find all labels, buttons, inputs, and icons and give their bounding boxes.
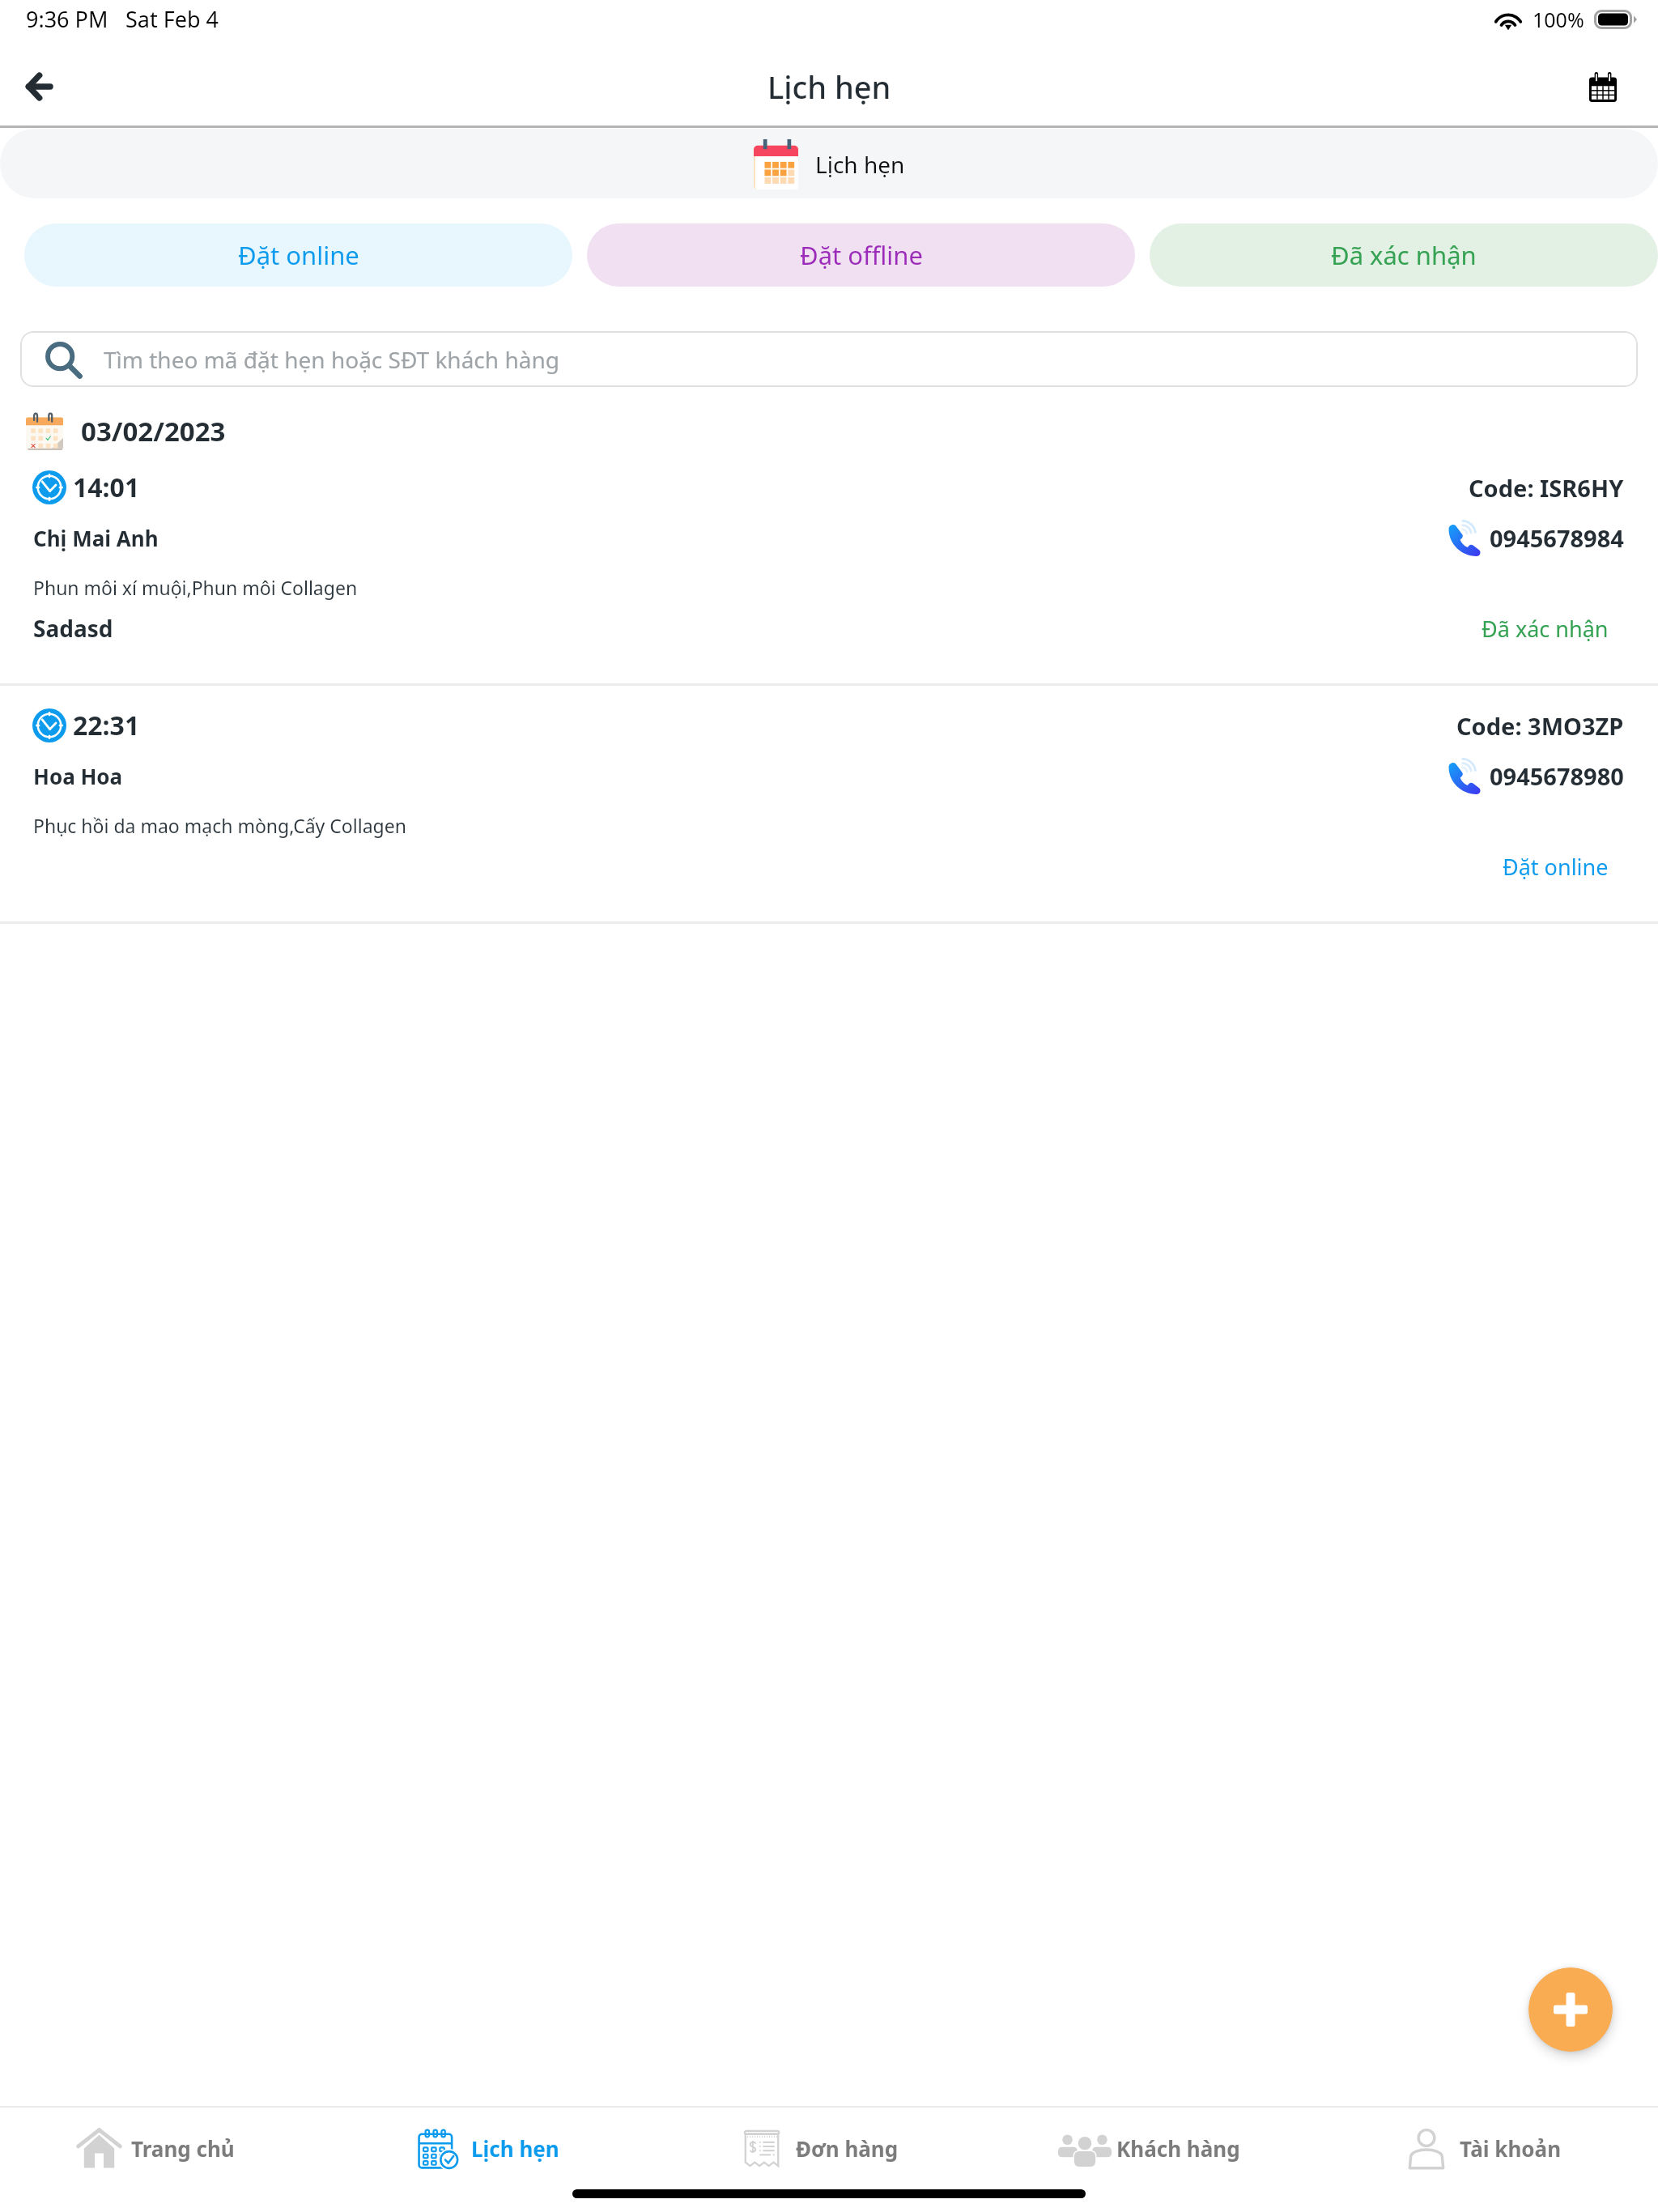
staticText: Đã xác nhận	[1331, 238, 1477, 272]
button[interactable]: Back	[10, 57, 68, 116]
button[interactable]: Tài khoản	[1401, 2108, 1568, 2189]
staticText: Phun môi xí muội,Phun môi Collagen	[33, 575, 358, 600]
staticText: Sat Feb 4	[125, 4, 219, 34]
staticText: Đã xác nhận	[1482, 614, 1609, 644]
staticText: Lịch hẹn	[767, 66, 891, 108]
staticText: 22:31	[73, 708, 140, 743]
staticText: 03/02/2023	[81, 413, 226, 449]
staticText: Code: 3MO3ZP	[1456, 710, 1624, 742]
button[interactable]: Đã xác nhận	[1150, 223, 1658, 287]
staticText: Khách hàng	[1116, 2134, 1240, 2163]
staticText: 0945678980	[1490, 760, 1624, 792]
button[interactable]: 22:31	[0, 690, 1658, 921]
button[interactable]: Tìm theo mã đặt hẹn hoặc SĐT khách hàng	[20, 331, 1638, 387]
staticText: Tài khoản	[1460, 2134, 1562, 2163]
button[interactable]: 14:01	[0, 452, 1658, 683]
staticText: Đơn hàng	[796, 2134, 899, 2163]
staticText: Chị Mai Anh	[33, 524, 159, 552]
button[interactable]: Khách hàng	[1052, 2108, 1247, 2189]
staticText: Tìm theo mã đặt hẹn hoặc SĐT khách hàng	[104, 344, 559, 375]
staticText: 100%	[1533, 6, 1584, 33]
staticText: Phục hồi da mao mạch mòng,Cấy Collagen	[33, 813, 406, 838]
staticText: Trang chủ	[131, 2134, 235, 2163]
button[interactable]: Đặt offline	[587, 223, 1135, 287]
button[interactable]: Đơn hàng	[737, 2108, 905, 2189]
staticText: Lịch hẹn	[471, 2134, 559, 2163]
staticText: Code: ISR6HY	[1469, 472, 1624, 504]
staticText: Đặt online	[1503, 852, 1609, 882]
button[interactable]: Lịch hẹn	[0, 129, 1658, 198]
staticText: 14:01	[73, 470, 140, 505]
staticText: Đặt offline	[800, 238, 923, 272]
staticText: 9:36 PM	[26, 4, 108, 34]
button[interactable]: Trang chủ	[70, 2108, 241, 2189]
staticText: Đặt online	[238, 238, 359, 272]
button[interactable]: Thêm lịch hẹn	[1528, 1967, 1613, 2052]
staticText: Hoa Hoa	[33, 762, 123, 790]
staticText: Sadasd	[33, 613, 113, 644]
button[interactable]: Lịch hẹn	[411, 2108, 566, 2189]
staticText: Lịch hẹn	[815, 149, 905, 180]
button[interactable]: Đặt online	[24, 223, 572, 287]
button[interactable]: Calendar	[1575, 59, 1630, 114]
staticText: 0945678984	[1490, 522, 1624, 554]
